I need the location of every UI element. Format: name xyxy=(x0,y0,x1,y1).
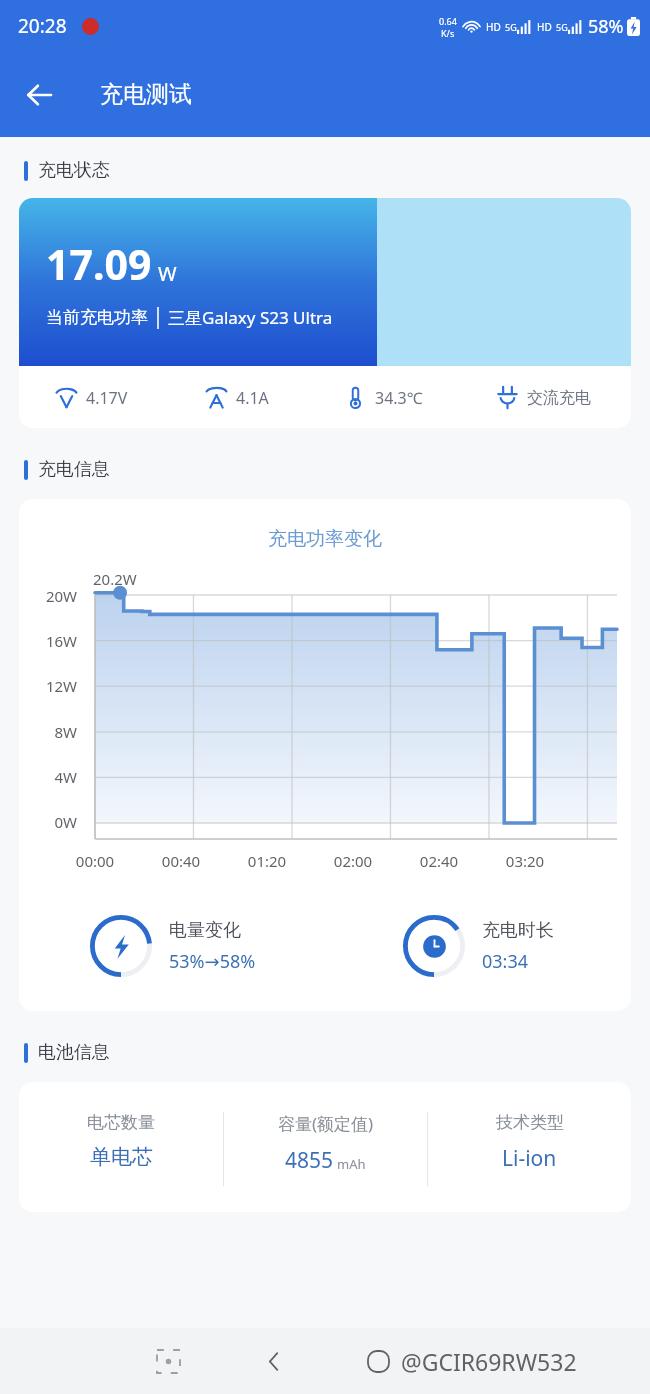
staticText: 充电功率变化 xyxy=(19,527,631,551)
staticText: 16W xyxy=(29,631,77,651)
staticText: 03:34 xyxy=(482,949,529,974)
staticText: 5G xyxy=(505,21,517,33)
staticText: 三星Galaxy S23 Ultra xyxy=(168,306,333,329)
staticText: 58% xyxy=(588,14,624,39)
staticText: Li-ion xyxy=(502,1144,557,1173)
staticText: 技术类型 xyxy=(496,1112,564,1133)
staticText: K/s xyxy=(441,27,455,39)
staticText: 电芯数量 xyxy=(87,1112,155,1133)
staticText: 02:00 xyxy=(310,851,396,871)
button[interactable]: 充电时长 xyxy=(325,914,631,978)
staticText: mAh xyxy=(337,1155,366,1173)
staticText: 单电芯 xyxy=(90,1144,153,1170)
staticText: 当前充电功率 xyxy=(46,307,148,328)
staticText: 交流充电 xyxy=(527,388,591,408)
staticText: 20.2W xyxy=(93,569,137,589)
staticText: W xyxy=(158,260,177,287)
staticText: @GCIR69RW532 xyxy=(401,1346,577,1377)
staticText: 01:20 xyxy=(224,851,310,871)
staticText: 20W xyxy=(29,586,77,606)
staticText: 电量变化 xyxy=(169,919,241,942)
button[interactable]: 充电功率变化 xyxy=(19,499,631,1011)
button[interactable]: Back xyxy=(251,1338,297,1384)
staticText: HD xyxy=(537,20,552,34)
staticText: 20:28 xyxy=(18,13,67,39)
button[interactable]: 34.3℃ xyxy=(310,386,456,409)
staticText: 17.09 xyxy=(46,236,152,292)
staticText: 00:40 xyxy=(138,851,224,871)
button[interactable]: Home xyxy=(355,1338,401,1384)
staticText: 8W xyxy=(29,722,77,742)
staticText: 03:20 xyxy=(482,851,568,871)
staticText: 34.3℃ xyxy=(375,387,423,409)
staticText: 充电测试 xyxy=(100,80,192,109)
staticText: 充电状态 xyxy=(38,159,110,182)
staticText: 容量(额定值) xyxy=(278,1112,374,1135)
staticText: 12W xyxy=(29,676,77,696)
staticText: 4.1A xyxy=(236,387,269,409)
button[interactable]: 交流充电 xyxy=(456,386,631,409)
staticText: 0W xyxy=(29,812,77,832)
staticText: 电池信息 xyxy=(38,1041,110,1064)
button[interactable]: 电芯数量 xyxy=(19,1082,631,1212)
staticText: 5G xyxy=(556,21,568,33)
staticText: 0.64 xyxy=(439,15,457,27)
staticText: 00:00 xyxy=(52,851,138,871)
staticText: HD xyxy=(486,20,501,34)
button[interactable]: Back xyxy=(14,70,64,120)
staticText: 4W xyxy=(29,767,77,787)
staticText: 4.17V xyxy=(86,387,128,409)
staticText: 充电时长 xyxy=(482,919,554,942)
button[interactable]: 4.17V xyxy=(19,386,164,409)
staticText: 53%→58% xyxy=(169,949,256,974)
button[interactable]: Recents xyxy=(145,1338,191,1384)
staticText: 充电信息 xyxy=(38,458,110,481)
staticText: 4855 xyxy=(285,1146,334,1175)
button[interactable]: 4.1A xyxy=(164,386,310,409)
staticText: 02:40 xyxy=(396,851,482,871)
button[interactable]: 17.09 xyxy=(19,198,631,428)
button[interactable]: 电量变化 xyxy=(19,914,325,978)
